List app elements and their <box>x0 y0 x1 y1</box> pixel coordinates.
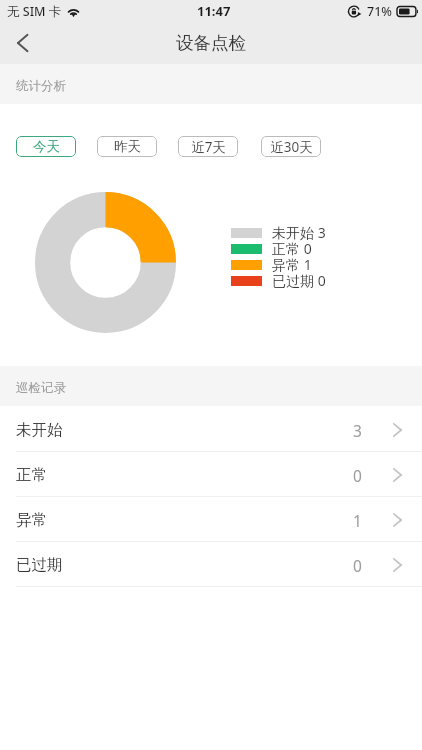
button[interactable]: 已过期 <box>0 542 422 587</box>
staticText: 0 <box>353 465 362 486</box>
staticText: 未开始 3 <box>272 223 326 242</box>
staticText: 0 <box>353 555 362 576</box>
staticText: 异常 1 <box>272 255 312 274</box>
staticText: 正常 <box>16 465 47 485</box>
staticText: 1 <box>353 510 362 531</box>
staticText: 近30天 <box>270 138 313 156</box>
staticText: 已过期 0 <box>272 271 326 290</box>
button[interactable]: 昨天 <box>97 136 157 157</box>
button[interactable]: Back <box>0 22 44 64</box>
staticText: 近7天 <box>191 138 226 156</box>
staticText: 11:47 <box>197 2 231 20</box>
button[interactable]: 正常 <box>0 452 422 497</box>
button[interactable]: 未开始 <box>0 407 422 452</box>
staticText: 71% <box>367 3 392 20</box>
staticText: 已过期 <box>16 555 63 575</box>
button[interactable]: 近30天 <box>261 136 321 157</box>
staticText: 3 <box>353 420 362 441</box>
button[interactable]: 今天 <box>16 136 76 157</box>
staticText: 今天 <box>33 138 60 155</box>
staticText: 巡检记录 <box>16 380 66 396</box>
staticText: 统计分析 <box>16 78 66 94</box>
staticText: 未开始 <box>16 420 63 440</box>
staticText: 无 SIM 卡 <box>7 3 62 20</box>
button[interactable]: 异常 <box>0 497 422 542</box>
staticText: 正常 0 <box>272 239 312 258</box>
staticText: 异常 <box>16 510 47 530</box>
staticText: 设备点检 <box>176 32 246 54</box>
staticText: 昨天 <box>114 138 141 155</box>
button[interactable]: 近7天 <box>178 136 238 157</box>
